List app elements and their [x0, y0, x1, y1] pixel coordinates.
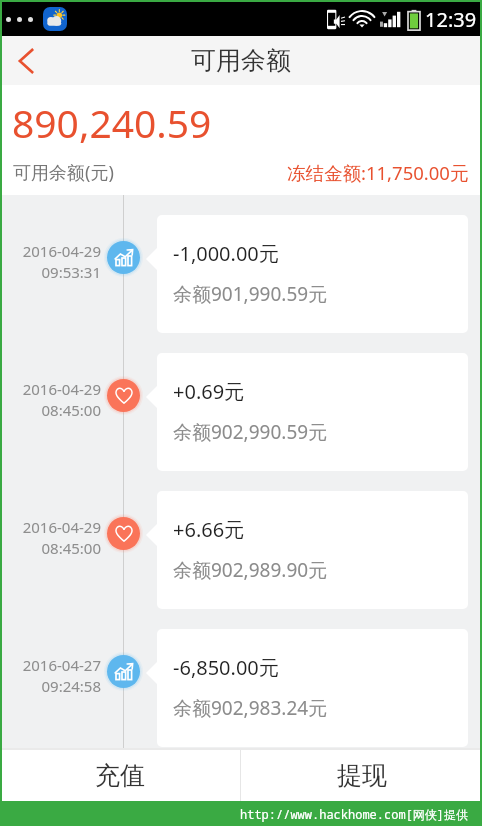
staticText: +6.66元 [173, 516, 245, 543]
button[interactable]: 2016-04-27 [0, 629, 482, 747]
staticText: 2016-04-29 [22, 379, 101, 399]
staticText: 08:45:00 [41, 538, 101, 558]
staticText: 余额902,983.24元 [173, 695, 328, 721]
staticText: 余额901,990.59元 [173, 281, 328, 307]
staticText: 充值 [95, 760, 145, 791]
staticText: 12:39 [425, 6, 477, 33]
button[interactable]: 提现 [241, 750, 482, 801]
staticText: 890,240.59 [12, 96, 212, 149]
button[interactable]: 充值 [0, 750, 240, 801]
staticText: 可用余额 [191, 45, 291, 76]
staticText: -6,850.00元 [173, 654, 279, 681]
staticText: 可用余额(元) [13, 160, 114, 185]
staticText: 2016-04-29 [22, 241, 101, 261]
staticText: +0.69元 [173, 378, 245, 405]
staticText: -1,000.00元 [173, 240, 279, 267]
button[interactable]: 2016-04-29 [0, 491, 482, 609]
staticText: 余额902,990.59元 [173, 419, 328, 445]
staticText: 冻结金额:11,750.00元 [287, 160, 469, 185]
staticText: 提现 [337, 760, 387, 791]
button[interactable]: 2016-04-29 [0, 215, 482, 333]
staticText: 09:24:58 [41, 676, 101, 696]
staticText: 08:45:00 [41, 400, 101, 420]
staticText: 2016-04-27 [22, 655, 101, 675]
staticText: 余额902,989.90元 [173, 557, 328, 583]
button[interactable]: 2016-04-29 [0, 353, 482, 471]
staticText: http://www.hackhome.com[网侠]提供 [240, 806, 469, 822]
staticText: 2016-04-29 [22, 517, 101, 537]
staticText: 09:53:31 [41, 262, 101, 282]
button[interactable]: Back [0, 36, 52, 85]
